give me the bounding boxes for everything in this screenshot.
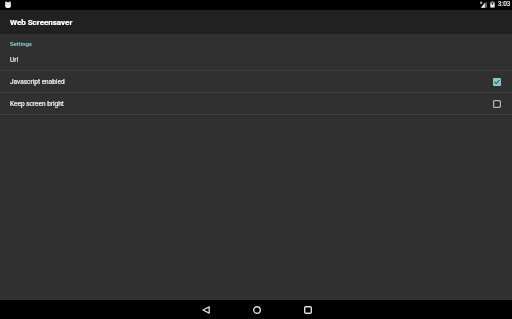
button[interactable]: Recent apps bbox=[291, 300, 325, 319]
staticText: Web Screensaver bbox=[10, 18, 73, 27]
button[interactable]: Home bbox=[240, 300, 274, 319]
button[interactable]: Url bbox=[0, 50, 512, 70]
button[interactable]: Javascript enabled bbox=[0, 71, 512, 92]
staticText: Url bbox=[10, 56, 18, 64]
staticText: 3:03 bbox=[498, 0, 511, 8]
staticText: Settings bbox=[10, 40, 512, 47]
button[interactable]: Back bbox=[189, 300, 223, 319]
staticText: Javascript enabled bbox=[10, 78, 493, 86]
button[interactable]: Keep screen bright bbox=[0, 93, 512, 114]
staticText: Keep screen bright bbox=[10, 100, 493, 108]
